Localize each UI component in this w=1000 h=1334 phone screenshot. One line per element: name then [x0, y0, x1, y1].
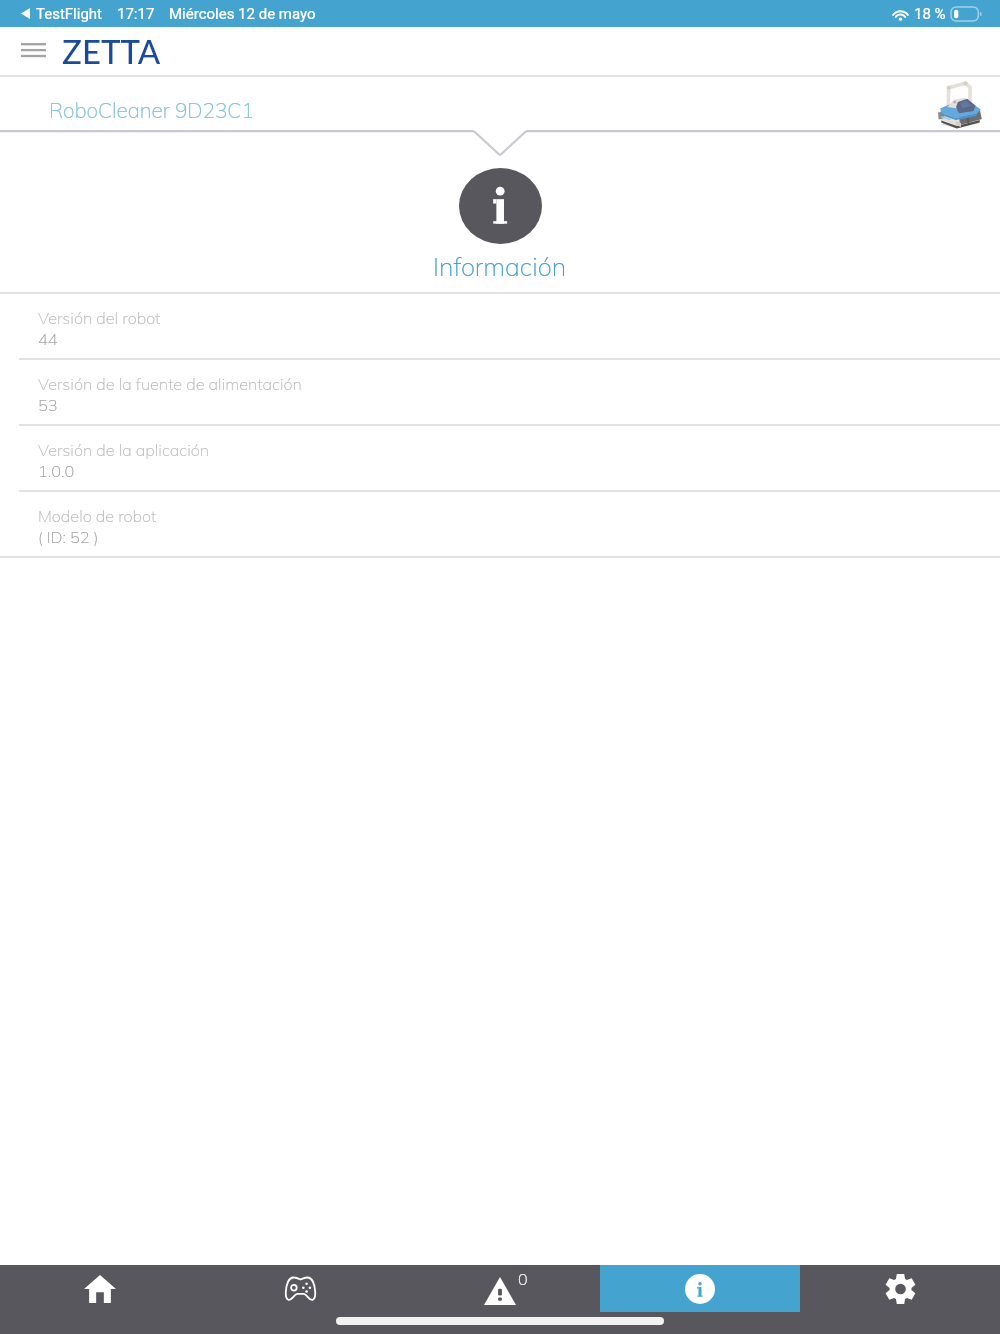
button[interactable]: Home: [0, 1265, 200, 1312]
staticText: Versión de la aplicación: [38, 440, 210, 460]
button[interactable]: Versión de la aplicación: [0, 426, 1000, 492]
button[interactable]: Modelo de robot: [0, 492, 1000, 558]
staticText: Versión de la fuente de alimentación: [38, 374, 302, 394]
staticText: 18 %: [914, 5, 946, 23]
button[interactable]: RoboCleaner 9D23C1: [0, 77, 1000, 131]
button[interactable]: Settings: [800, 1265, 1000, 1312]
staticText: Modelo de robot: [38, 506, 157, 526]
staticText: 0: [518, 1269, 528, 1289]
button[interactable]: Alerts: [400, 1265, 600, 1312]
staticText: TestFlight: [36, 5, 103, 23]
button[interactable]: Information: [459, 168, 542, 244]
staticText: ZETTA: [62, 31, 161, 71]
staticText: Información: [433, 251, 567, 283]
button[interactable]: Menu: [14, 31, 53, 71]
staticText: 17:17: [117, 5, 155, 23]
staticText: 1.0.0: [38, 461, 75, 481]
staticText: Versión del robot: [38, 308, 161, 328]
button[interactable]: Games: [200, 1265, 400, 1312]
button[interactable]: Versión del robot: [0, 294, 1000, 360]
staticText: 44: [38, 329, 58, 349]
staticText: ( ID: 52 ): [38, 527, 99, 547]
staticText: 53: [38, 395, 58, 415]
staticText: Miércoles 12 de mayo: [169, 5, 316, 23]
button[interactable]: Versión de la fuente de alimentación: [0, 360, 1000, 426]
button[interactable]: Information: [600, 1265, 800, 1312]
staticText: RoboCleaner 9D23C1: [49, 97, 254, 123]
